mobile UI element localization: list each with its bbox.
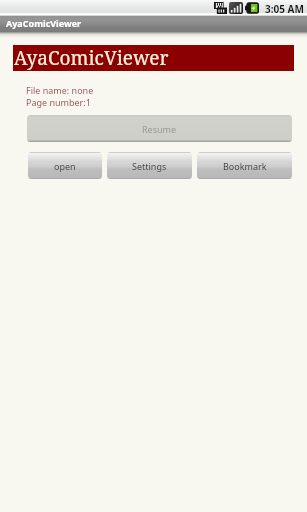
staticText: AyaComicViewer (14, 45, 169, 71)
other: Battery charging (245, 2, 259, 14)
staticText: Settings (132, 160, 167, 172)
staticText: 3:05 AM (265, 2, 304, 16)
other: Signal strength (229, 2, 243, 14)
button[interactable]: open (28, 152, 102, 179)
staticText: Page number:1 (26, 96, 91, 108)
staticText: Resume (142, 123, 177, 135)
staticText: open (54, 160, 76, 172)
staticText: AyaComicViewer (6, 17, 82, 29)
staticText: File name: none (26, 84, 94, 96)
button[interactable]: Settings (107, 152, 192, 179)
other: SD card (214, 2, 227, 14)
button[interactable]: Bookmark (197, 152, 292, 179)
staticText: Bookmark (223, 160, 267, 172)
button[interactable]: Resume (27, 115, 292, 142)
